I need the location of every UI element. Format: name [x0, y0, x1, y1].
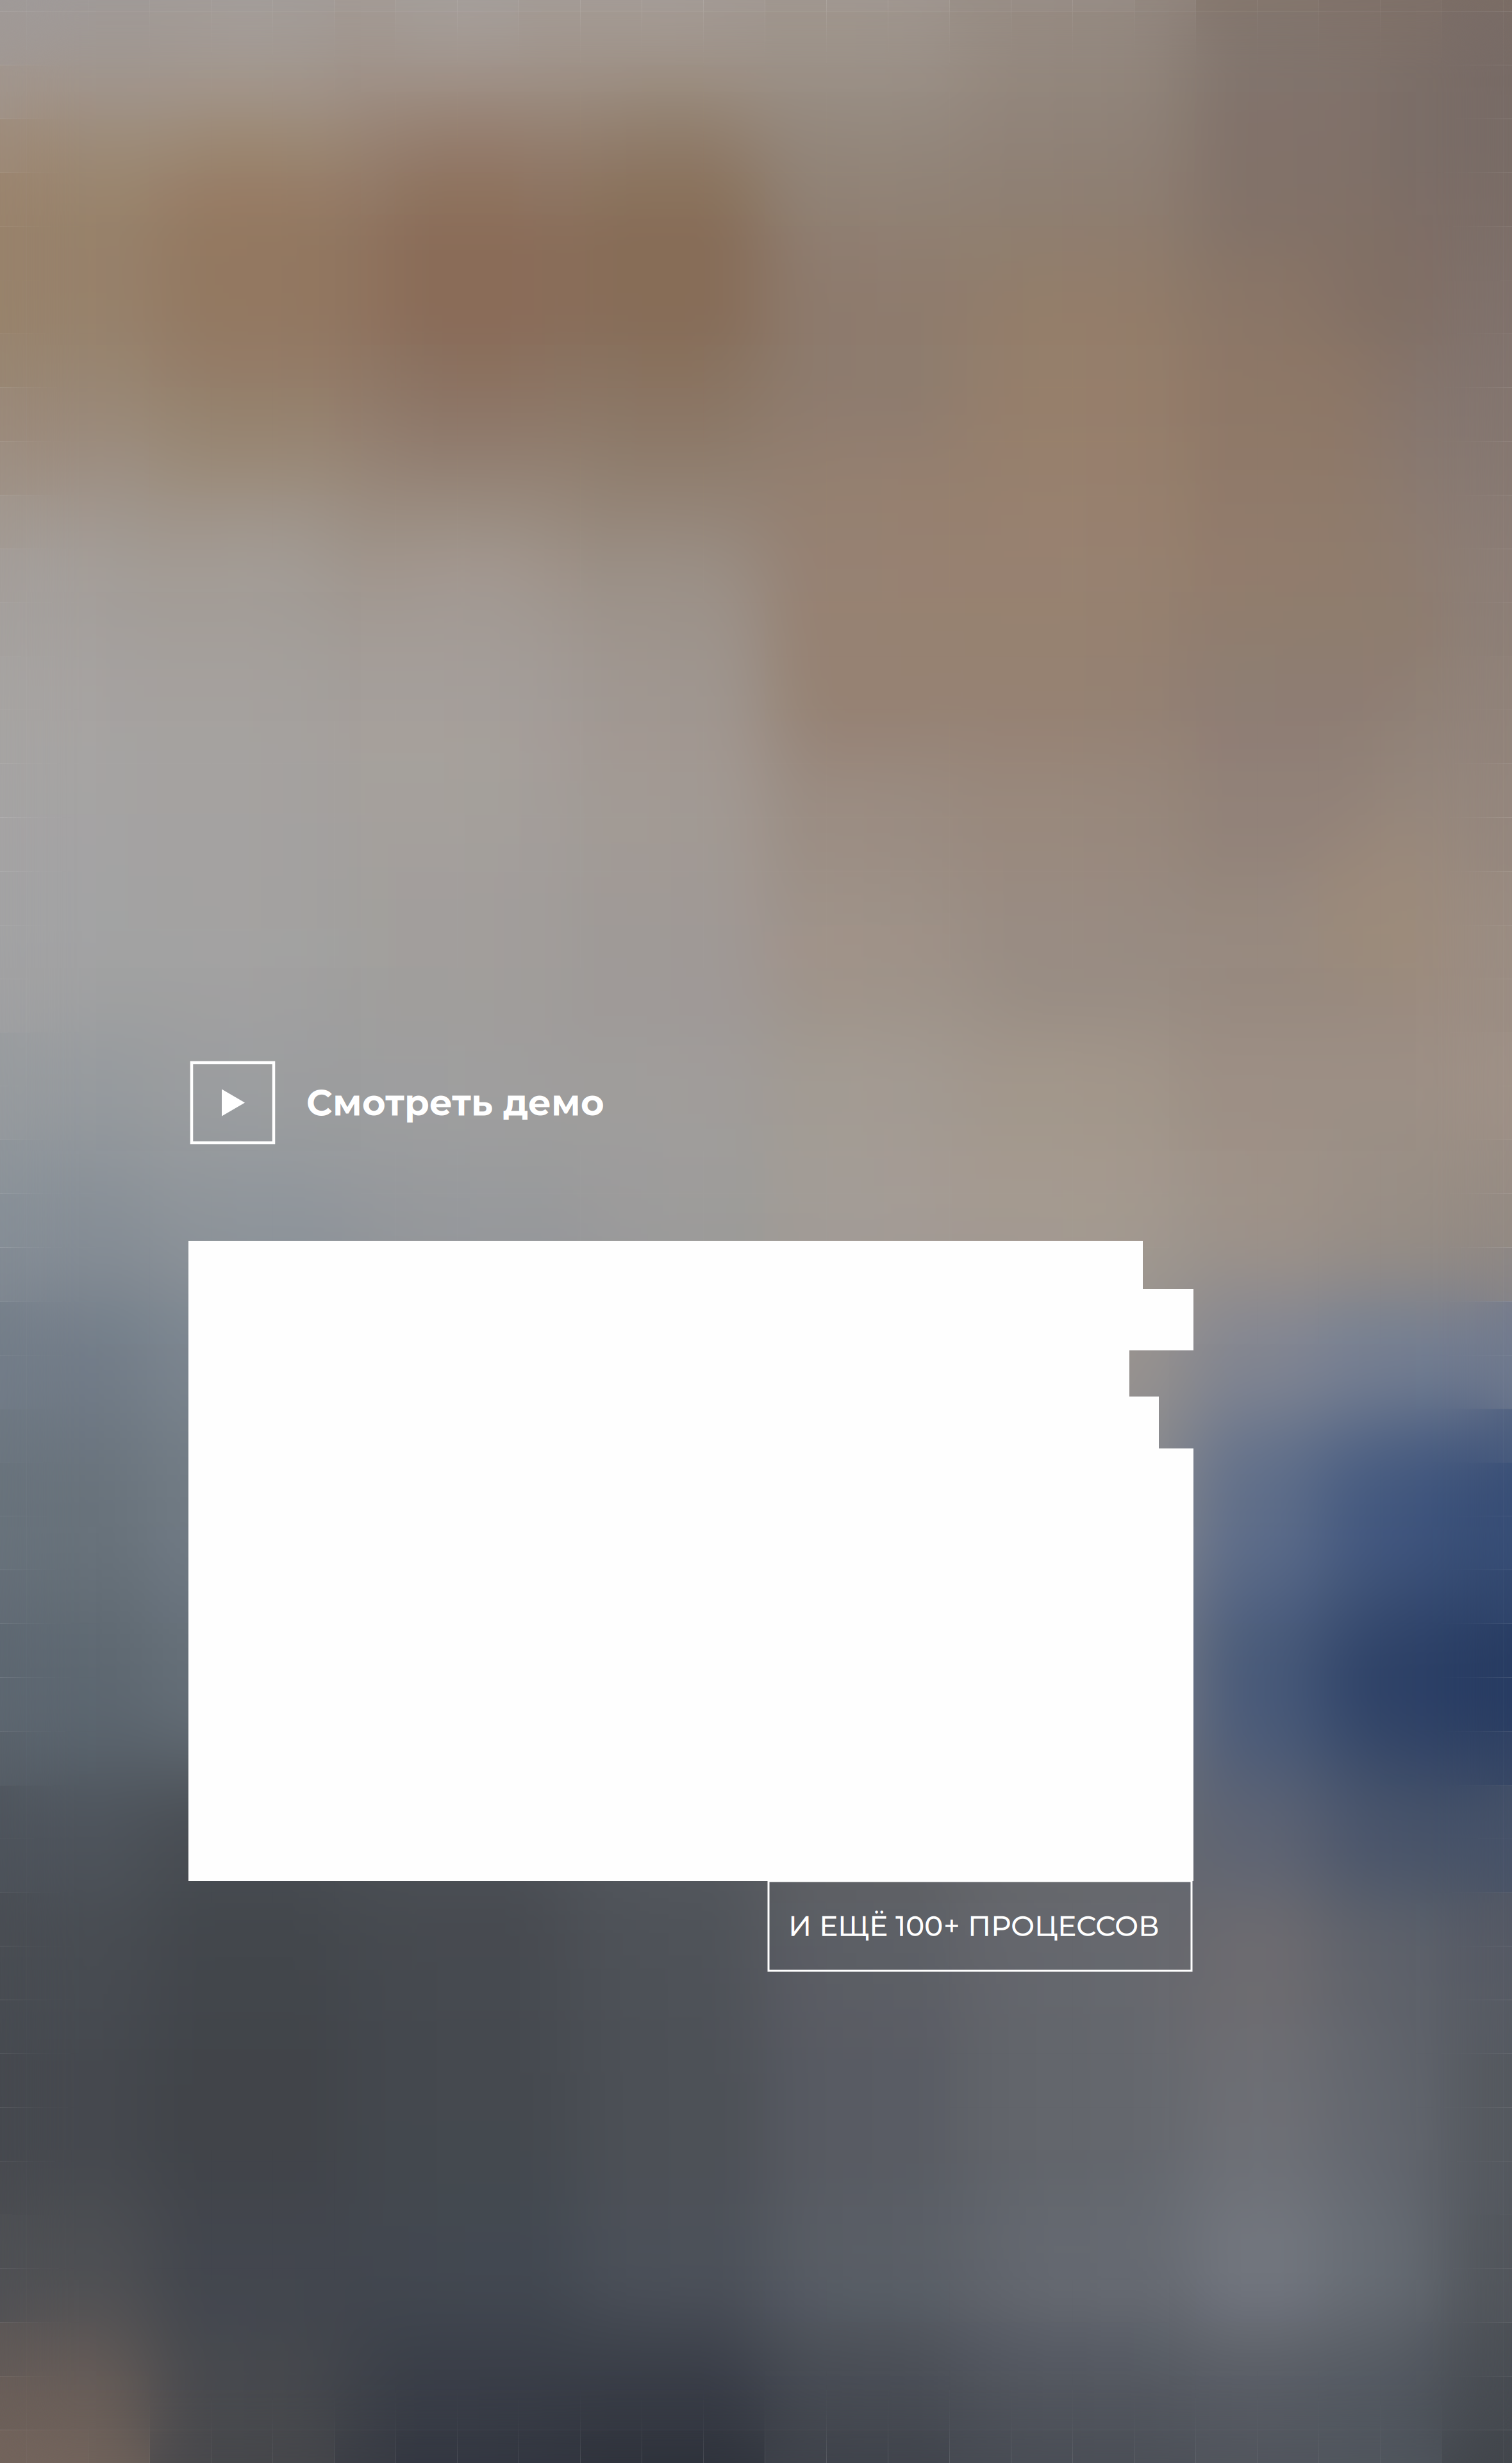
button[interactable]: Смотреть демо	[191, 1062, 572, 1143]
button[interactable]: И ЕЩЁ 100+ ПРОЦЕССОВ	[768, 1881, 1192, 1971]
staticText: И ЕЩЁ 100+ ПРОЦЕССОВ	[788, 1909, 1159, 1943]
staticText: Смотреть демо	[306, 1081, 604, 1125]
